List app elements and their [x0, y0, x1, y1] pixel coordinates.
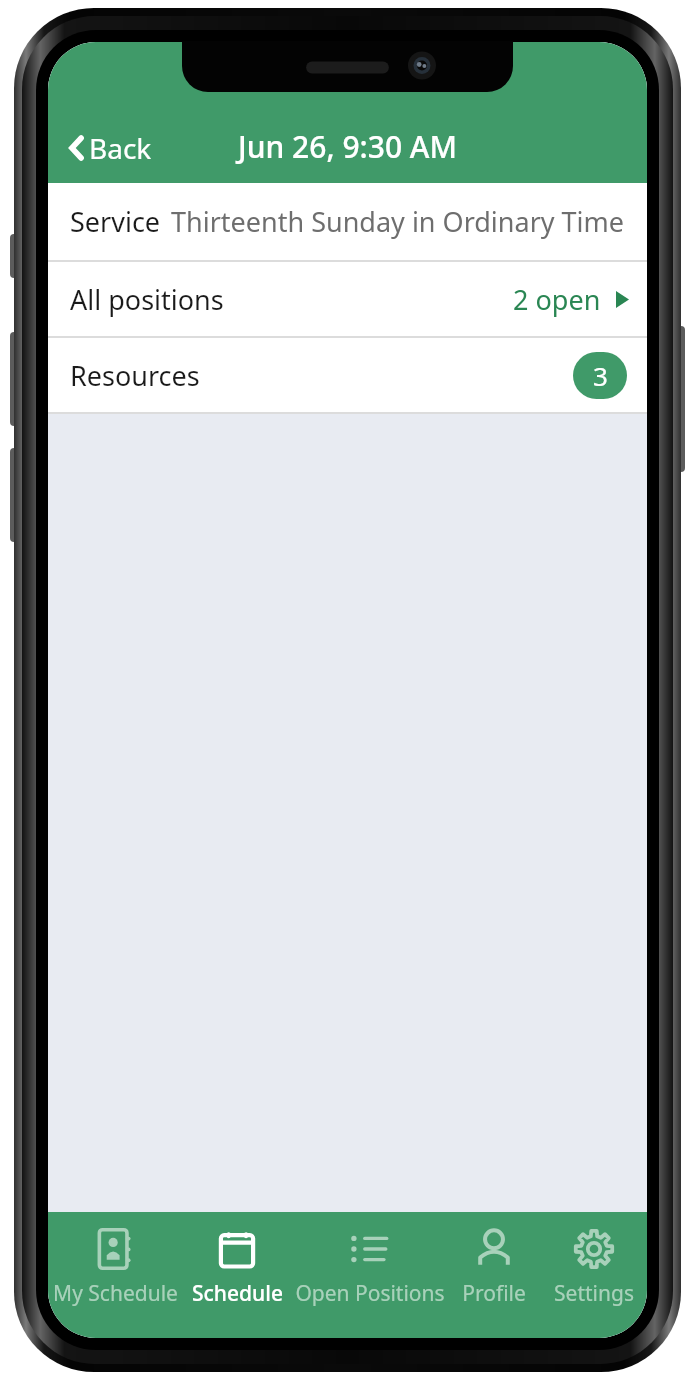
staticText: Back [89, 129, 152, 167]
button[interactable]: My Schedule [48, 1212, 182, 1338]
staticText: Jun 26, 9:30 AM [238, 126, 458, 167]
staticText: My Schedule [53, 1279, 178, 1308]
staticText: Thirteenth Sunday in Ordinary Time [171, 203, 625, 240]
staticText: Profile [462, 1279, 526, 1308]
staticText: 2 open [513, 281, 601, 318]
button[interactable]: Settings [541, 1212, 647, 1338]
staticText: 3 [593, 358, 608, 393]
button[interactable]: Back [60, 121, 162, 175]
button[interactable]: Open Positions [292, 1212, 447, 1338]
staticText: Settings [554, 1279, 634, 1308]
staticText: Open Positions [295, 1279, 445, 1308]
button[interactable]: Profile [447, 1212, 541, 1338]
staticText: Resources [70, 357, 200, 394]
staticText: Schedule [192, 1279, 283, 1308]
staticText: All positions [70, 281, 224, 318]
button[interactable]: Resources [48, 338, 647, 412]
button[interactable]: All positions [48, 262, 647, 336]
staticText: Service [70, 203, 161, 240]
button[interactable]: Service [48, 183, 647, 260]
button[interactable]: Schedule [182, 1212, 292, 1338]
